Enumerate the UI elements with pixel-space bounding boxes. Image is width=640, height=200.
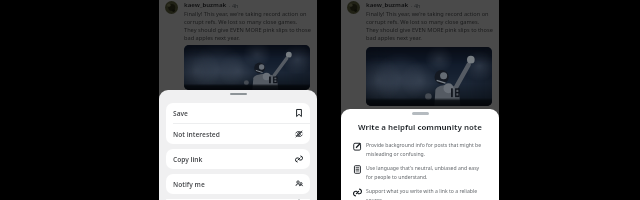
staticText: Save xyxy=(173,109,188,118)
staticText: Support what you write with a link to a … xyxy=(366,188,485,200)
staticText: Provide background info for posts that m… xyxy=(366,142,485,158)
staticText: kaew_buzmak xyxy=(184,1,227,9)
other: Notify me xyxy=(295,180,303,188)
button[interactable]: Mute xyxy=(166,199,310,200)
button[interactable]: Copy link xyxy=(166,149,310,169)
other: Save xyxy=(295,109,303,117)
staticText: Write a helpful community note xyxy=(358,122,482,133)
staticText: Not interested xyxy=(173,130,220,139)
other: Copy link xyxy=(353,188,362,197)
other: Not interested xyxy=(295,130,303,138)
staticText: Use language that's neutral, unbiased an… xyxy=(366,165,485,181)
button[interactable]: Save xyxy=(166,103,310,123)
staticText: · 4h xyxy=(229,2,239,9)
staticText: Copy link xyxy=(173,155,203,164)
button[interactable]: Notify me xyxy=(166,174,310,194)
button[interactable]: Not interested xyxy=(166,124,310,144)
staticText: · 4h xyxy=(411,2,421,9)
other: Mute xyxy=(295,199,303,200)
staticText: Finally! This year, we're taking record … xyxy=(366,10,493,42)
other: Copy link xyxy=(295,155,303,163)
staticText: Notify me xyxy=(173,180,205,189)
staticText: Finally! This year, we're taking record … xyxy=(184,10,311,42)
staticText: kaew_buzmak xyxy=(366,1,409,9)
